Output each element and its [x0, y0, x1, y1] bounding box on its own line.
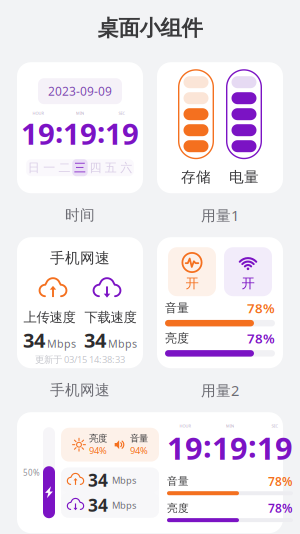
staticText: 19 — [105, 114, 139, 153]
staticText: : — [55, 112, 63, 151]
staticText: 下载速度 — [84, 309, 136, 326]
staticText: Mbps — [47, 336, 76, 351]
staticText: 34 — [23, 327, 45, 353]
staticText: 音量 — [130, 433, 148, 444]
staticText: MIN — [76, 110, 84, 116]
staticText: Mbps — [112, 474, 136, 486]
staticText: 二 — [59, 160, 71, 175]
staticText: Mbps — [108, 336, 137, 351]
staticText: 19 — [63, 114, 97, 153]
staticText: 78% — [268, 473, 293, 489]
staticText: 50% — [23, 467, 40, 478]
staticText: 四 — [89, 160, 101, 175]
staticText: HOUR — [32, 110, 43, 116]
staticText: 手机网速 — [50, 381, 110, 399]
staticText: SEC — [118, 110, 125, 116]
staticText: 开 — [185, 275, 198, 291]
staticText: Mbps — [112, 499, 136, 511]
staticText: : — [203, 425, 212, 466]
staticText: 亮度 — [165, 331, 189, 346]
staticText: 开 — [241, 275, 254, 291]
staticText: 存储 — [181, 168, 211, 186]
staticText: 上传速度 — [23, 309, 75, 326]
staticText: 亮度 — [167, 502, 189, 515]
staticText: 19 — [212, 428, 248, 468]
staticText: 19 — [257, 428, 293, 468]
staticText: 94% — [130, 444, 148, 457]
staticText: 用量2 — [201, 380, 239, 400]
staticText: 五 — [105, 160, 117, 175]
staticText: 桌面小组件 — [97, 15, 202, 41]
staticText: : — [97, 112, 105, 151]
staticText: 手机网速 — [50, 249, 110, 267]
staticText: 一 — [43, 160, 55, 175]
staticText: 34 — [88, 469, 108, 492]
staticText: 时间 — [65, 206, 95, 224]
staticText: 三 — [74, 160, 86, 175]
staticText: 用量1 — [201, 205, 239, 225]
staticText: 78% — [247, 329, 275, 347]
staticText: MIN — [226, 423, 234, 428]
staticText: 78% — [268, 500, 293, 516]
staticText: HOUR — [179, 423, 190, 428]
staticText: 亮度 — [89, 433, 107, 444]
staticText: 音量 — [165, 301, 189, 315]
staticText: 2023-09-09 — [48, 83, 112, 99]
staticText: 78% — [247, 299, 275, 317]
staticText: SEC — [271, 423, 278, 428]
staticText: 34 — [88, 494, 108, 517]
staticText: 音量 — [167, 475, 189, 488]
button[interactable]: 开 — [224, 247, 272, 296]
staticText: 日 — [28, 160, 40, 175]
staticText: 六 — [120, 160, 132, 175]
staticText: 19 — [21, 114, 55, 153]
button[interactable]: 开 — [168, 247, 216, 296]
staticText: 34 — [84, 327, 106, 353]
staticText: 更新于 03/15 14:38:33 — [35, 353, 125, 366]
staticText: 94% — [89, 444, 107, 457]
staticText: 19 — [167, 428, 203, 468]
staticText: 电量 — [229, 168, 259, 186]
staticText: : — [248, 425, 257, 466]
